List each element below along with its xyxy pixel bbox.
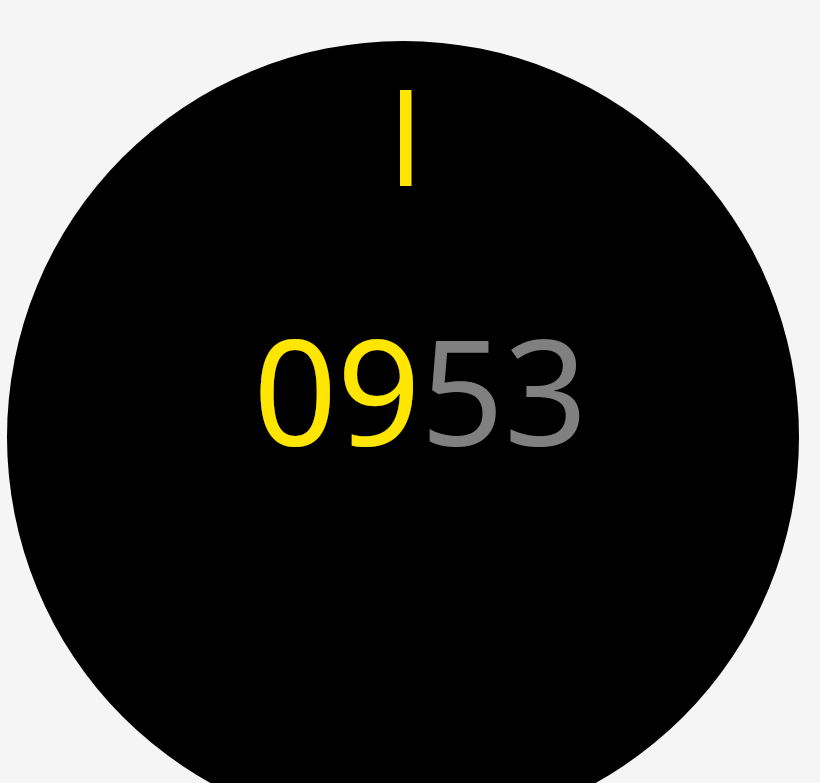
button[interactable]: 0953 — [0, 0, 820, 783]
staticText: 0953 — [253, 290, 588, 489]
button[interactable]: 0953 — [0, 0, 820, 783]
other: Twelve o'clock marker — [0, 0, 820, 783]
